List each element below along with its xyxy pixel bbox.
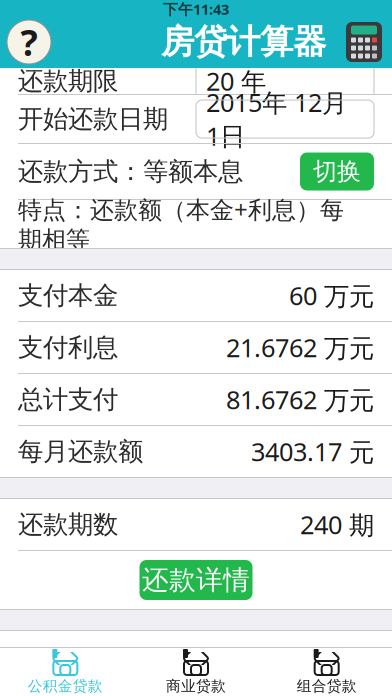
staticText: 特点：还款额（本金+利息）每期相等 xyxy=(18,193,344,255)
staticText: 支付利息 xyxy=(18,332,118,363)
staticText: 组合贷款 xyxy=(297,677,357,695)
button[interactable]: 公积金贷款 xyxy=(0,648,131,696)
staticText: 还款方式：等额本息 xyxy=(18,156,243,187)
button[interactable]: 还款详情 xyxy=(139,560,252,600)
button[interactable]: 计算器 xyxy=(336,18,392,66)
staticText: 2015年 12月 1日 xyxy=(206,85,347,153)
button[interactable]: 帮助 xyxy=(0,18,58,66)
staticText: 21.6762 万元 xyxy=(226,331,374,364)
staticText: 240 期 xyxy=(300,508,374,541)
staticText: 切换 xyxy=(313,157,361,186)
staticText: 商业贷款 xyxy=(166,677,226,695)
staticText: 还款详情 xyxy=(142,564,250,596)
staticText: 开始还款日期 xyxy=(18,103,168,134)
staticText: 还款期数 xyxy=(18,509,118,540)
staticText: ? xyxy=(20,18,37,66)
staticText: 公积金贷款 xyxy=(28,677,103,695)
staticText: 20 年 xyxy=(206,64,266,98)
staticText: 3403.17 元 xyxy=(251,435,374,468)
staticText: 下午11:43 xyxy=(163,0,229,19)
staticText: 每月还款额 xyxy=(18,436,143,467)
staticText: 还款期限 xyxy=(18,65,118,96)
staticText: 支付本金 xyxy=(18,280,118,311)
button[interactable]: 组合贷款 xyxy=(261,648,392,696)
staticText: 60 万元 xyxy=(289,279,374,312)
staticText: 房贷计算器 xyxy=(161,21,326,62)
button[interactable]: 切换 xyxy=(300,152,374,190)
button[interactable]: 商业贷款 xyxy=(131,648,261,696)
staticText: 81.6762 万元 xyxy=(226,383,374,416)
staticText: 总计支付 xyxy=(18,384,118,415)
